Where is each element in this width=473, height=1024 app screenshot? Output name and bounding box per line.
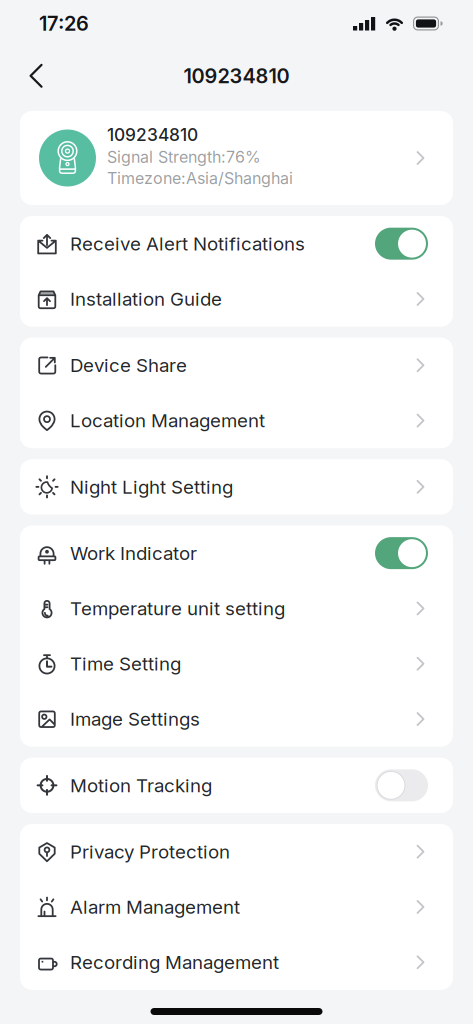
button[interactable]: Time Setting [20,636,453,691]
staticText: Work Indicator [70,542,197,564]
button[interactable]: Receive Alert Notifications [20,216,453,271]
staticText: Location Management [70,409,265,432]
staticText: Time Setting [70,652,181,675]
staticText: 109234810 [183,64,289,88]
button[interactable]: On [375,228,428,260]
staticText: Privacy Protection [70,840,230,863]
button[interactable]: Image Settings [20,691,453,747]
button[interactable]: Alarm Management [20,879,453,935]
button[interactable]: Temperature unit setting [20,581,453,636]
button[interactable]: 109234810 [20,111,453,205]
staticText: Image Settings [70,708,200,730]
staticText: Installation Guide [70,288,222,310]
staticText: Motion Tracking [70,774,212,797]
button[interactable]: Work Indicator [20,525,453,581]
staticText: Device Share [70,354,187,377]
staticText: Temperature unit setting [70,597,285,620]
button[interactable]: Motion Tracking [20,758,453,813]
button[interactable]: Privacy Protection [20,824,453,879]
button[interactable]: Off [375,769,428,801]
staticText: Alarm Management [70,896,240,918]
button[interactable]: Installation Guide [20,271,453,327]
button[interactable]: Recording Management [20,935,453,990]
staticText: 17:26 [39,11,89,36]
staticText: Night Light Setting [70,476,233,498]
button[interactable]: Back [0,55,44,96]
staticText: Recording Management [70,951,279,974]
button[interactable]: On [375,537,428,569]
staticText: Receive Alert Notifications [70,232,305,255]
button[interactable]: Night Light Setting [20,459,453,514]
staticText: 109234810 [107,124,198,145]
button[interactable]: Location Management [20,393,453,448]
staticText: Timezone:Asia/Shanghai [107,168,293,188]
button[interactable]: Device Share [20,338,453,393]
staticText: Signal Strength:76% [107,147,261,166]
